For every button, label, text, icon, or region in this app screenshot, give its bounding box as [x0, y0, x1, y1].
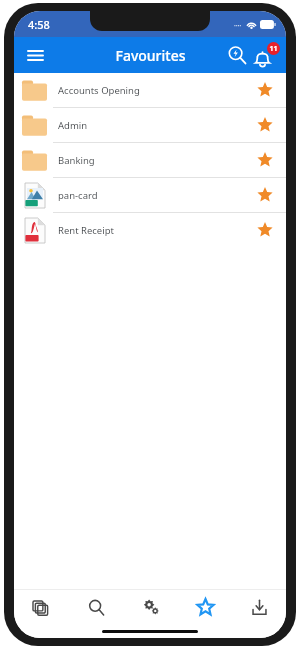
button[interactable]: Accounts Opening [14, 73, 286, 107]
staticText: Accounts Opening [58, 84, 252, 97]
button[interactable]: Favourites [178, 590, 232, 624]
staticText: Banking [58, 154, 252, 167]
button[interactable]: Remove pan-card from favourites [252, 182, 278, 208]
button[interactable]: Remove Rent Receipt from favourites [252, 217, 278, 243]
button[interactable]: Downloads [232, 590, 286, 624]
staticText: Rent Receipt [58, 224, 252, 237]
staticText: 4:58 [28, 17, 50, 32]
button[interactable]: Settings [124, 590, 178, 624]
button[interactable]: Documents [14, 590, 69, 624]
button[interactable]: Quick search [222, 40, 252, 70]
staticText: 11 [269, 44, 278, 54]
button[interactable]: Notifications, 11 unread [252, 40, 282, 70]
button[interactable]: Search [69, 590, 124, 624]
staticText: Favourites [115, 46, 186, 65]
button[interactable]: Remove Banking from favourites [252, 147, 278, 173]
staticText: Admin [58, 119, 252, 132]
button[interactable]: pan-card [14, 178, 286, 212]
button[interactable]: Admin [14, 108, 286, 142]
button[interactable]: Remove Admin from favourites [252, 112, 278, 138]
button[interactable]: Remove Accounts Opening from favourites [252, 77, 278, 103]
button[interactable]: Banking [14, 143, 286, 177]
button[interactable]: Rent Receipt [14, 213, 286, 247]
button[interactable]: Open navigation menu [20, 40, 50, 70]
staticText: pan-card [58, 189, 252, 202]
